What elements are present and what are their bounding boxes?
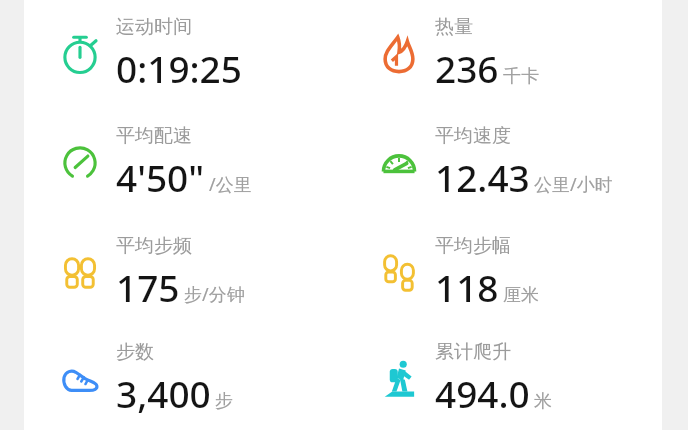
staticText: 平均配速 [116,124,192,148]
button[interactable]: Average pace [24,108,343,218]
button[interactable]: Total ascent [343,328,662,430]
staticText: 0:19:25 [116,43,242,93]
staticText: 累计爬升 [435,340,511,364]
staticText: 平均步频 [116,234,192,258]
button[interactable]: Average cadence [24,218,343,328]
staticText: 运动时间 [116,15,192,39]
button[interactable]: Steps [24,328,343,430]
other: Average stride [378,252,420,294]
staticText: 步/分钟 [184,282,245,307]
other: Average pace [59,142,101,184]
staticText: 12.43 [435,152,530,202]
staticText: 236 [435,43,499,93]
button[interactable]: Calories [343,0,662,108]
staticText: 平均速度 [435,124,511,148]
staticText: 千卡 [503,65,539,88]
staticText: 3,400 [116,368,211,418]
button[interactable]: Average stride [343,218,662,328]
staticText: 热量 [435,15,473,39]
staticText: 公里/小时 [534,172,613,197]
staticText: 175 [116,262,180,312]
staticText: 4'50" [116,152,205,202]
staticText: 步 [215,390,233,413]
staticText: /公里 [209,172,252,197]
staticText: 步数 [116,340,154,364]
other: Steps [59,358,101,400]
staticText: 厘米 [503,284,539,307]
staticText: 118 [435,262,499,312]
other: Total ascent [378,358,420,400]
button[interactable]: Average speed [343,108,662,218]
other: Average speed [378,142,420,184]
staticText: 494.0 [435,368,530,418]
button[interactable]: Duration [24,0,343,108]
other: Average cadence [59,252,101,294]
staticText: 米 [534,390,552,413]
other: Calories [378,33,420,75]
other: Duration [59,33,101,75]
staticText: 平均步幅 [435,234,511,258]
